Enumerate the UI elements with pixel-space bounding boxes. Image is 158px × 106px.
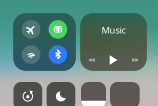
- button[interactable]: Rotation Lock: [13, 82, 42, 106]
- button[interactable]: Wi-Fi: [22, 45, 40, 64]
- button[interactable]: Bluetooth: [49, 45, 67, 64]
- button[interactable]: Cellular Data: [49, 20, 67, 39]
- button[interactable]: Volume: [110, 82, 140, 106]
- button[interactable]: Next Track: [124, 52, 146, 68]
- button[interactable]: Airplane Mode: [22, 20, 40, 39]
- button[interactable]: Play: [102, 52, 124, 68]
- button[interactable]: Brightness: [81, 82, 106, 106]
- button[interactable]: Do Not Disturb: [47, 82, 75, 106]
- button[interactable]: Previous Track: [80, 52, 102, 68]
- staticText: Music: [101, 24, 125, 36]
